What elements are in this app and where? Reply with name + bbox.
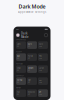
staticText: Auto xyxy=(39,93,42,95)
staticText: On xyxy=(17,57,19,59)
staticText: On xyxy=(17,69,19,71)
button[interactable]: Medium xyxy=(27,65,37,73)
staticText: Off xyxy=(28,45,30,47)
staticText: Dark xyxy=(28,43,32,45)
staticText: Dark Mode xyxy=(21,32,29,39)
staticText: CONTRAST xyxy=(16,75,24,77)
staticText: Pink xyxy=(39,55,42,57)
button[interactable]: Pink xyxy=(38,53,48,61)
button[interactable]: Purple xyxy=(27,53,37,61)
staticText: Off xyxy=(28,93,30,95)
staticText: Off xyxy=(28,57,30,59)
staticText: Off xyxy=(28,81,30,83)
staticText: Blue xyxy=(17,55,20,57)
button[interactable]: Large xyxy=(38,65,48,73)
button[interactable]: Full xyxy=(16,89,26,97)
staticText: Appearance settings xyxy=(18,10,46,14)
button[interactable]: High xyxy=(27,77,37,85)
staticText: ACCENT xyxy=(16,51,22,53)
staticText: Medium xyxy=(28,67,33,69)
staticText: Light xyxy=(17,43,21,45)
staticText: APPEARANCE xyxy=(16,39,26,41)
staticText: Auto xyxy=(39,45,42,47)
button[interactable]: Blue xyxy=(16,53,26,61)
staticText: Large xyxy=(39,67,44,69)
staticText: Small xyxy=(17,67,20,69)
button[interactable]: Max xyxy=(38,77,48,85)
staticText: On xyxy=(17,81,19,83)
staticText: On xyxy=(17,45,19,47)
staticText: Auto xyxy=(39,57,42,59)
button[interactable]: Auto xyxy=(38,41,48,49)
staticText: MOTION xyxy=(16,87,21,89)
staticText: Dark Mode xyxy=(18,3,45,10)
staticText: Off xyxy=(39,91,41,93)
staticText: Auto xyxy=(39,43,43,45)
button[interactable]: Small xyxy=(16,65,26,73)
staticText: Normal xyxy=(17,79,22,81)
staticText: TEXT SIZE xyxy=(16,63,23,65)
button[interactable]: Normal xyxy=(16,77,26,85)
button[interactable]: Off xyxy=(38,89,48,97)
button[interactable]: Dark xyxy=(27,41,37,49)
staticText: Purple xyxy=(28,55,33,57)
staticText: Full xyxy=(17,91,19,93)
staticText: Auto xyxy=(39,69,42,71)
staticText: Auto xyxy=(39,81,42,83)
staticText: High xyxy=(28,79,31,81)
button[interactable]: Reduced xyxy=(27,89,37,97)
staticText: Max xyxy=(39,79,42,81)
staticText: On xyxy=(17,93,19,95)
button[interactable]: Light xyxy=(16,41,26,49)
staticText: Off xyxy=(28,69,30,71)
staticText: 9:41 xyxy=(16,28,19,30)
